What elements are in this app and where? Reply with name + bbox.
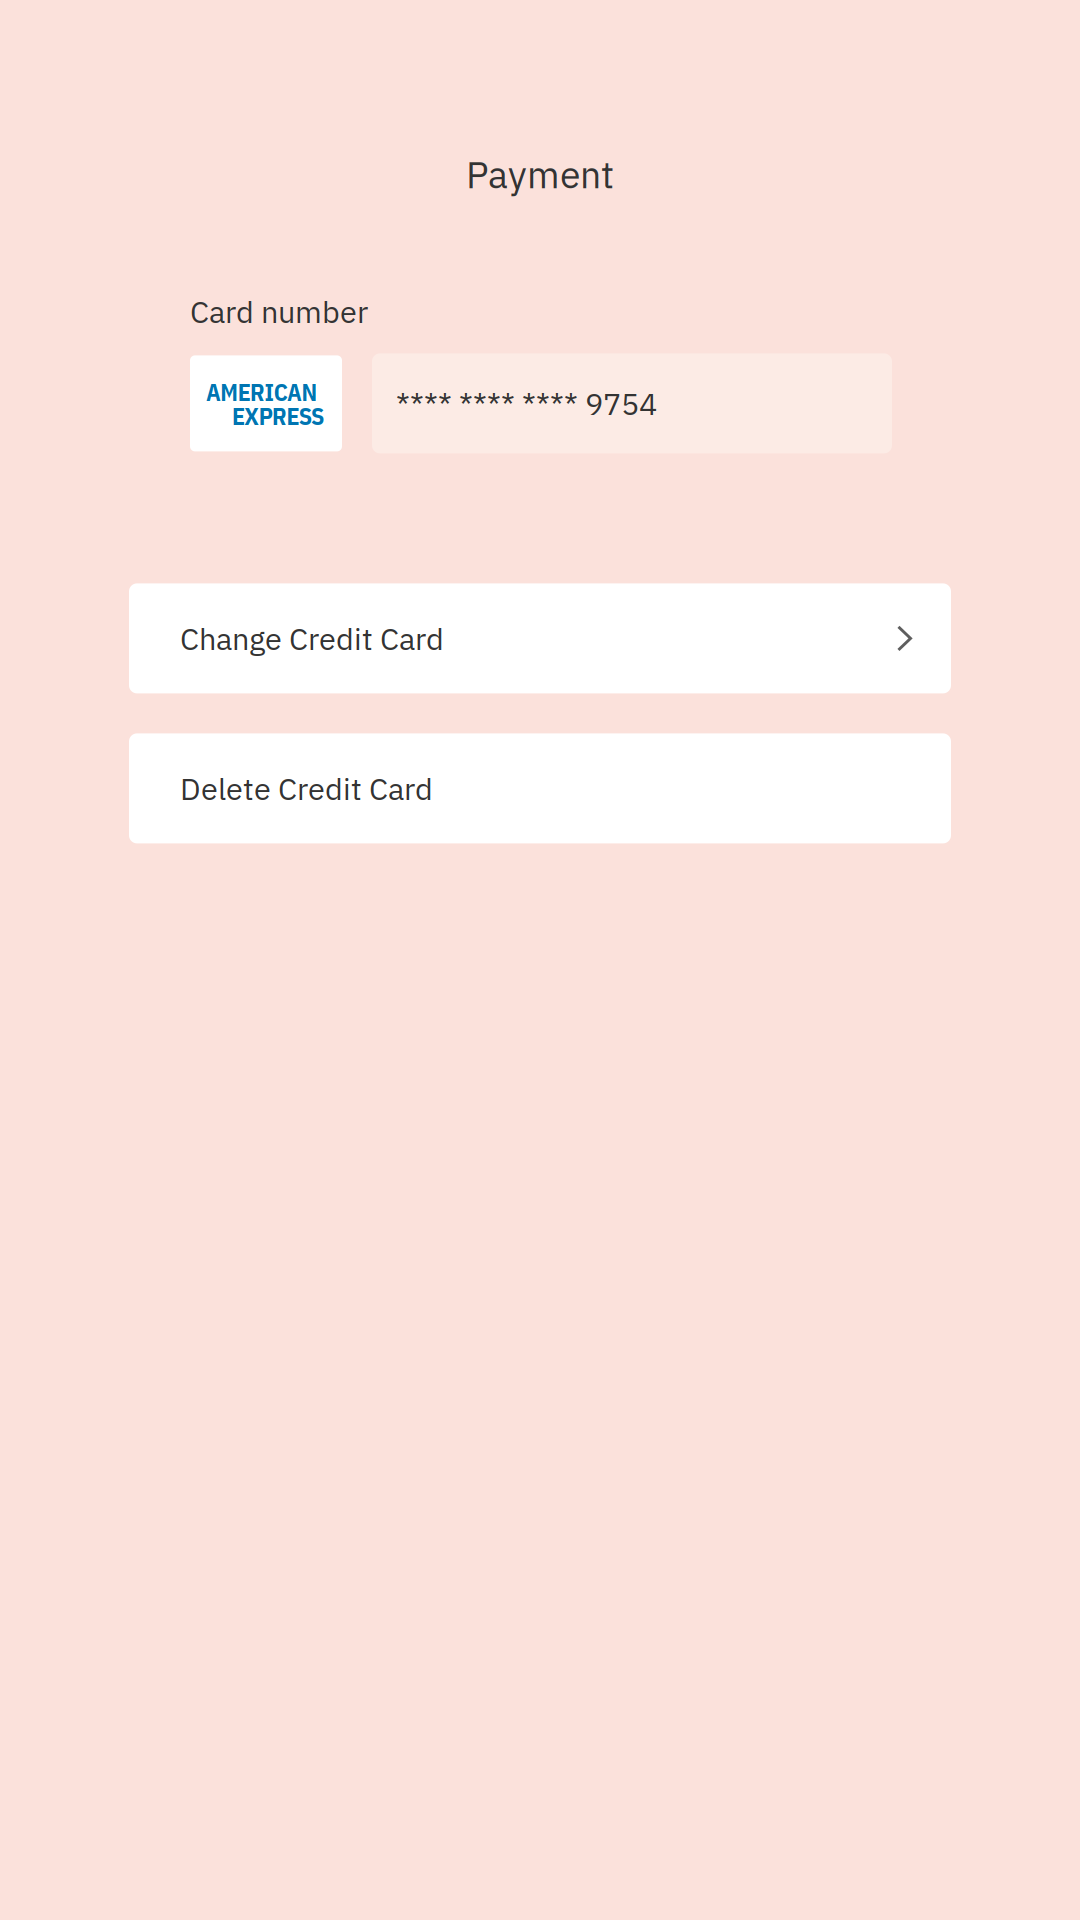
staticText: Delete Credit Card (180, 768, 433, 808)
staticText: EXPRESS (232, 400, 324, 432)
staticText: AMERICAN (206, 376, 317, 408)
staticText: Card number (190, 291, 368, 331)
staticText: Change Credit Card (180, 618, 444, 658)
staticText: Payment (466, 150, 614, 198)
button[interactable]: Change Credit Card (129, 583, 951, 693)
staticText: **** **** **** 9754 (396, 383, 657, 423)
button[interactable]: Delete Credit Card (129, 733, 951, 843)
